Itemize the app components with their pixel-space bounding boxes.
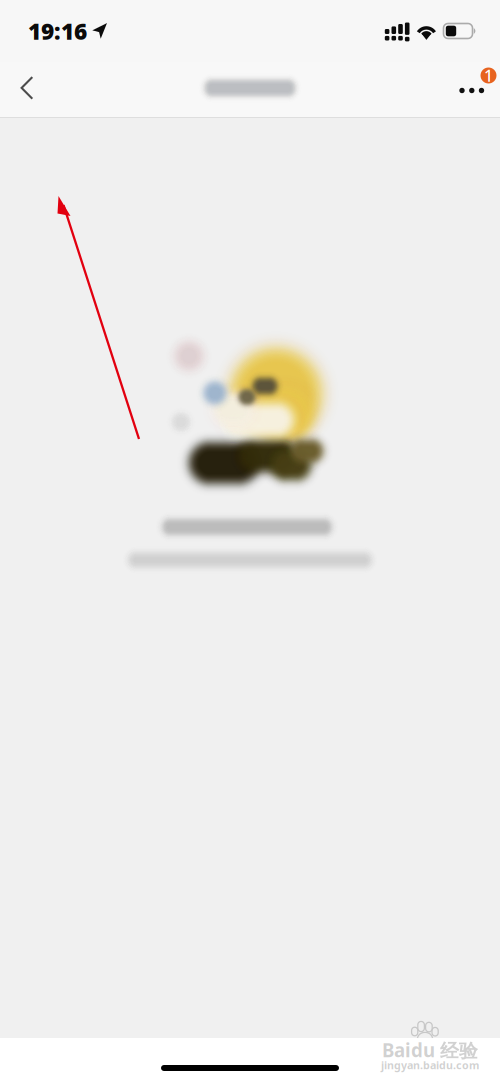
staticText: 1 (484, 65, 493, 86)
button[interactable]: More options (452, 64, 500, 112)
staticText: jingyan.baidu.com (381, 1058, 479, 1072)
button[interactable]: Back (4, 65, 50, 111)
staticText: Baidu 经验 (382, 1038, 478, 1062)
staticText: 19:16 (28, 16, 87, 46)
